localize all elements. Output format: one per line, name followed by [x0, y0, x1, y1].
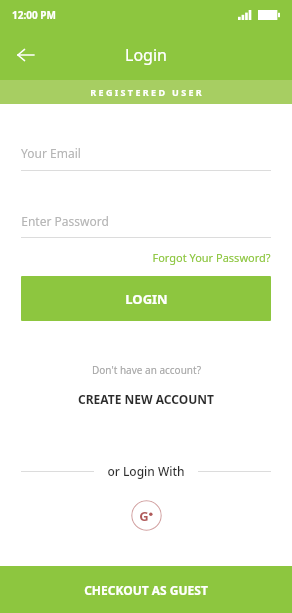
staticText: LOGIN — [125, 290, 168, 308]
staticText: R E G I S T E R E D U S E R — [90, 86, 202, 98]
button[interactable]: Login with Google — [131, 500, 162, 531]
staticText: Don't have an account? — [92, 363, 201, 377]
button[interactable]: Your Email — [21, 136, 271, 170]
button[interactable]: CHECKOUT AS GUEST — [0, 566, 292, 613]
button[interactable]: Forgot Your Password? — [152, 247, 271, 268]
button[interactable]: Back — [6, 35, 46, 75]
staticText: Enter Password — [21, 213, 109, 229]
staticText: CHECKOUT AS GUEST — [84, 582, 208, 598]
staticText: Login — [125, 44, 167, 66]
button[interactable]: Enter Password — [21, 205, 271, 237]
button[interactable]: CREATE NEW ACCOUNT — [70, 388, 222, 410]
staticText: 12:00 PM — [12, 8, 56, 22]
button[interactable]: LOGIN — [21, 276, 271, 321]
staticText: CREATE NEW ACCOUNT — [78, 391, 214, 407]
staticText: or Login With — [107, 463, 185, 479]
staticText: Forgot Your Password? — [152, 250, 271, 265]
staticText: G — [139, 507, 149, 525]
staticText: Your Email — [21, 145, 81, 161]
